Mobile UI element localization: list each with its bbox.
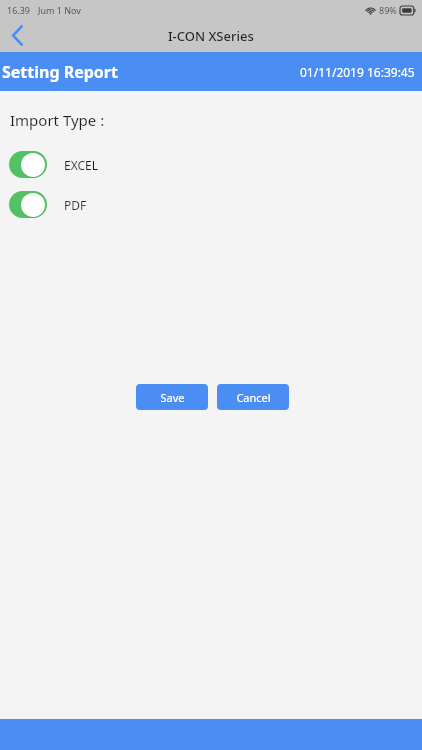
staticText: Cancel <box>236 390 271 405</box>
staticText: Jum 1 Nov <box>38 4 81 16</box>
button[interactable]: Cancel <box>217 384 289 410</box>
button[interactable]: Back <box>0 19 34 52</box>
staticText: EXCEL <box>64 157 99 173</box>
staticText: Setting Report <box>2 61 118 83</box>
staticText: PDF <box>64 197 87 213</box>
staticText: 16.39 <box>7 4 31 16</box>
button[interactable]: Toggle on <box>9 191 47 218</box>
staticText: I-CON XSeries <box>168 27 254 45</box>
staticText: 89% <box>379 4 397 16</box>
staticText: Import Type : <box>10 110 105 130</box>
staticText: Save <box>160 390 185 405</box>
button[interactable]: Save <box>136 384 208 410</box>
staticText: 01/11/2019 16:39:45 <box>300 64 415 80</box>
button[interactable]: Toggle on <box>9 151 47 178</box>
